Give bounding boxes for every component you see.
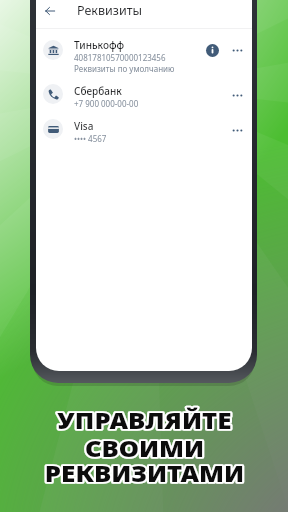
button[interactable]: Тинькофф [36,38,252,84]
staticText: Тинькофф [74,38,125,52]
button[interactable]: More options [231,89,244,102]
staticText: УПРАВЛЯЙТЕ [57,405,232,436]
button[interactable]: Visa [36,119,252,155]
staticText: +7 900 000-00-00 [74,98,139,109]
staticText: РЕКВИЗИТАМИ [45,458,244,489]
staticText: Сбербанк [74,84,122,98]
button[interactable]: More options [231,124,244,137]
staticText: Реквизиты [77,2,142,19]
staticText: Visa [74,119,94,133]
staticText: Реквизиты по умолчанию [74,63,175,74]
staticText: •••• 4567 [74,133,107,144]
staticText: 40817810570000123456 [74,52,166,63]
staticText: СВОИМИ [85,433,204,464]
staticText: РЕКВИЗИТАМИ [45,458,244,489]
button[interactable]: Info [206,44,219,57]
staticText: СВОИМИ [85,433,204,464]
staticText: УПРАВЛЯЙТЕ [57,405,232,436]
button[interactable]: Сбербанк [36,84,252,119]
button[interactable]: More options [231,44,244,57]
button[interactable]: Back [40,1,60,21]
